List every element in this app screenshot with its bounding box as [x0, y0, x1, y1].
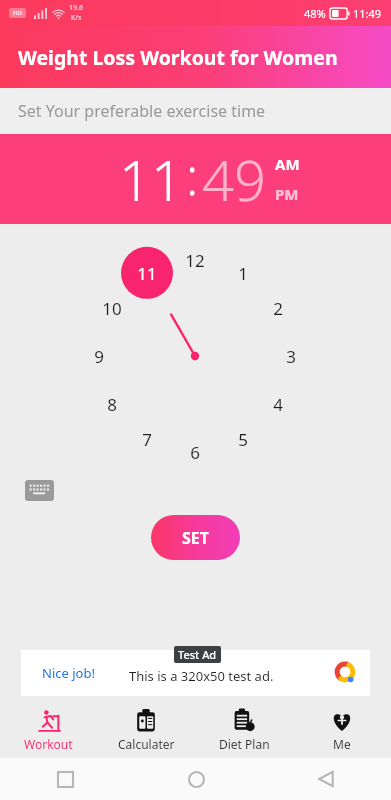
button[interactable]: 11	[119, 141, 183, 217]
button[interactable]: 4	[258, 388, 298, 420]
button[interactable]: 49	[202, 141, 266, 217]
staticText: Test Ad	[178, 647, 217, 662]
staticText: 19.6	[69, 3, 83, 13]
button[interactable]: Switch to keyboard input	[25, 480, 54, 501]
staticText: :	[186, 142, 199, 210]
staticText: 4	[273, 393, 283, 416]
staticText: SET	[182, 527, 210, 549]
staticText: 9	[94, 345, 104, 368]
button[interactable]: AM	[275, 153, 300, 175]
staticText: Nice job!	[42, 664, 95, 682]
staticText: This is a 320x50 test ad.	[129, 667, 274, 685]
staticText: 11:49	[353, 6, 382, 21]
staticText: 2	[273, 297, 283, 320]
staticText: Workout	[24, 736, 73, 752]
button[interactable]: Diet Plan	[195, 702, 293, 758]
button[interactable]: 2	[258, 292, 298, 324]
button[interactable]: 1	[223, 257, 263, 289]
staticText: Calculater	[118, 736, 175, 752]
staticText: 6	[190, 441, 200, 464]
staticText: HD	[13, 9, 22, 17]
button[interactable]: SET	[151, 515, 240, 560]
button[interactable]: Home	[131, 758, 261, 800]
staticText: K/s	[71, 13, 82, 23]
button[interactable]: Recent apps	[0, 758, 131, 800]
staticText: 7	[142, 428, 152, 451]
button[interactable]: 3	[271, 340, 311, 372]
staticText: 3	[286, 345, 296, 368]
staticText: 10	[102, 297, 122, 320]
button[interactable]: 12	[175, 244, 215, 276]
button[interactable]: Nice job!	[21, 650, 370, 696]
staticText: 1	[238, 262, 248, 285]
button[interactable]: 11	[127, 257, 167, 289]
staticText: 11	[137, 262, 157, 285]
button[interactable]: 7	[127, 423, 167, 455]
button[interactable]: Calculater	[97, 702, 195, 758]
staticText: PM	[275, 184, 299, 204]
button[interactable]: Workout	[0, 702, 97, 758]
button[interactable]: 10	[92, 292, 132, 324]
staticText: 48%	[304, 6, 326, 21]
staticText: 12	[185, 249, 205, 272]
staticText: 5	[238, 428, 248, 451]
staticText: Weight Loss Workout for Women	[18, 44, 338, 71]
button[interactable]: PM	[275, 183, 299, 205]
button[interactable]: 9	[79, 340, 119, 372]
button[interactable]: Back	[261, 758, 391, 800]
staticText: AM	[275, 154, 300, 174]
button[interactable]: 6	[175, 436, 215, 468]
staticText: 11	[119, 141, 183, 217]
staticText: 49	[202, 141, 266, 217]
button[interactable]: 5	[223, 423, 263, 455]
button[interactable]: 8	[92, 388, 132, 420]
button[interactable]: Me	[293, 702, 391, 758]
staticText: Diet Plan	[219, 736, 270, 752]
staticText: Me	[333, 736, 351, 752]
staticText: Set Your preferable exercise time	[18, 100, 266, 122]
staticText: 8	[107, 393, 117, 416]
